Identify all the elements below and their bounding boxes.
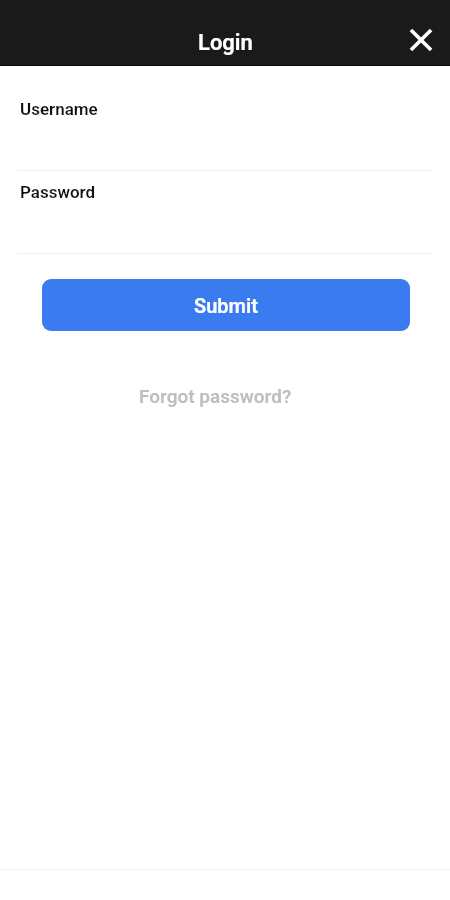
staticText: Submit	[194, 294, 258, 317]
staticText: Username	[20, 99, 98, 119]
staticText: Login	[198, 30, 253, 56]
staticText: Password	[20, 182, 96, 202]
staticText: Forgot password?	[139, 385, 292, 407]
button[interactable]: Username	[0, 85, 450, 171]
button[interactable]: Close	[397, 16, 445, 64]
button[interactable]: Password	[0, 168, 450, 254]
button[interactable]: Forgot password?	[133, 381, 298, 411]
button[interactable]: Submit	[42, 279, 410, 331]
